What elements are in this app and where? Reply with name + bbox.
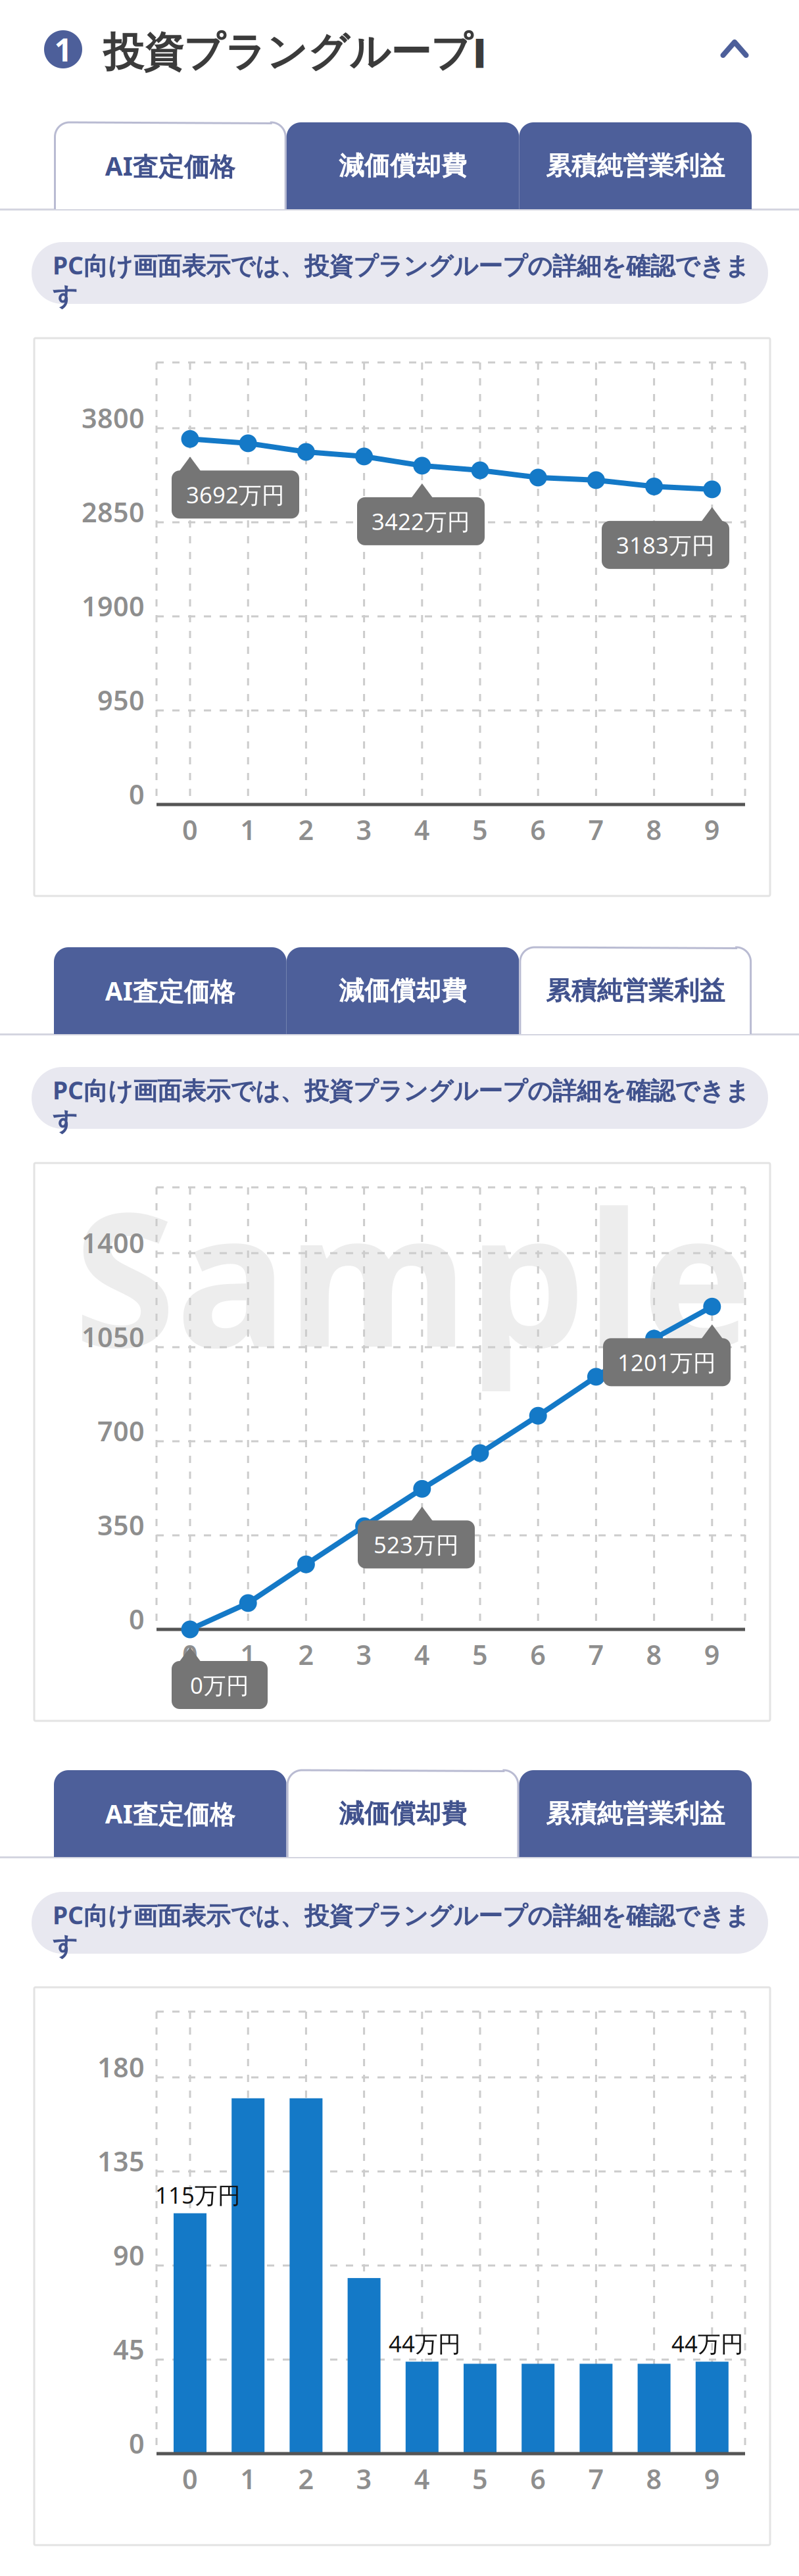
staticText: 2 [298, 2461, 314, 2497]
button[interactable]: グループを折りたたむ [700, 14, 769, 83]
button[interactable]: 減価償却費 [287, 122, 519, 209]
staticText: 0 [129, 1601, 145, 1637]
staticText: 44万円 [389, 2328, 461, 2358]
staticText: 8 [646, 1636, 662, 1672]
staticText: 7 [588, 2461, 604, 2497]
staticText: 3183万円 [616, 530, 715, 560]
staticText: 0 [182, 811, 198, 848]
staticText: 4 [414, 1636, 430, 1672]
button[interactable]: AI査定価格 [54, 1770, 287, 1857]
staticText: 950 [97, 682, 145, 718]
staticText: 2 [298, 1636, 314, 1672]
staticText: 1 [240, 1636, 256, 1672]
staticText: 0万円 [190, 1670, 249, 1700]
staticText: PC向け画面表示では、投資プラングループの詳細を確認できます [53, 1898, 750, 1961]
staticText: AI査定価格 [105, 1797, 235, 1830]
staticText: 5 [472, 2461, 488, 2497]
staticText: 45 [113, 2331, 145, 2367]
staticText: 減価償却費 [339, 975, 467, 1006]
staticText: 7 [588, 811, 604, 848]
staticText: 135 [97, 2143, 145, 2179]
button[interactable]: 減価償却費 [287, 947, 519, 1034]
staticText: 1900 [82, 588, 145, 624]
staticText: 7 [588, 1636, 604, 1672]
staticText: 44万円 [671, 2328, 744, 2358]
staticText: 0 [182, 2461, 198, 2497]
staticText: 0 [129, 776, 145, 812]
staticText: 1 [240, 2461, 256, 2497]
staticText: 5 [472, 1636, 488, 1672]
staticText: 累積純営業利益 [546, 1798, 725, 1829]
button[interactable]: AI査定価格 [54, 122, 287, 209]
staticText: 115万円 [155, 2180, 241, 2210]
button[interactable]: 減価償却費 [287, 1770, 519, 1857]
staticText: 減価償却費 [339, 150, 467, 181]
staticText: 523万円 [374, 1529, 459, 1560]
staticText: 9 [704, 811, 720, 848]
staticText: 8 [646, 811, 662, 848]
staticText: 4 [414, 811, 430, 848]
staticText: 3 [356, 1636, 372, 1672]
staticText: 累積純営業利益 [546, 975, 725, 1006]
staticText: 3422万円 [372, 506, 470, 536]
staticText: 8 [646, 2461, 662, 2497]
staticText: 6 [530, 811, 546, 848]
staticText: 3692万円 [186, 479, 285, 510]
button[interactable]: 累積純営業利益 [519, 1770, 752, 1857]
staticText: 700 [97, 1413, 145, 1449]
staticText: 9 [704, 1636, 720, 1672]
staticText: 90 [113, 2237, 145, 2273]
staticText: 3 [356, 811, 372, 848]
staticText: 3800 [82, 400, 145, 436]
staticText: 1050 [82, 1319, 145, 1355]
staticText: AI査定価格 [105, 149, 235, 183]
staticText: 累積純営業利益 [546, 150, 725, 181]
staticText: 9 [704, 2461, 720, 2497]
staticText: Sample [73, 1151, 753, 1398]
staticText: PC向け画面表示では、投資プラングループの詳細を確認できます [53, 1074, 750, 1136]
staticText: 3 [356, 2461, 372, 2497]
staticText: 180 [97, 2049, 145, 2085]
staticText: 1 [54, 28, 72, 70]
staticText: 2 [298, 811, 314, 848]
staticText: 2850 [82, 494, 145, 530]
button[interactable]: AI査定価格 [54, 947, 287, 1034]
staticText: 1 [240, 811, 256, 848]
staticText: 投資プラングループⅠ [103, 28, 487, 77]
staticText: PC向け画面表示では、投資プラングループの詳細を確認できます [53, 249, 750, 312]
staticText: 5 [472, 811, 488, 848]
staticText: 1400 [82, 1225, 145, 1261]
staticText: AI査定価格 [105, 974, 235, 1008]
staticText: 6 [530, 1636, 546, 1672]
staticText: 減価償却費 [339, 1798, 467, 1829]
staticText: 350 [97, 1507, 145, 1543]
staticText: 4 [414, 2461, 430, 2497]
staticText: 6 [530, 2461, 546, 2497]
button[interactable]: 累積純営業利益 [519, 122, 752, 209]
button[interactable]: 累積純営業利益 [519, 947, 752, 1034]
staticText: 0 [182, 1636, 198, 1672]
staticText: 1201万円 [617, 1347, 716, 1377]
staticText: 0 [129, 2425, 145, 2461]
